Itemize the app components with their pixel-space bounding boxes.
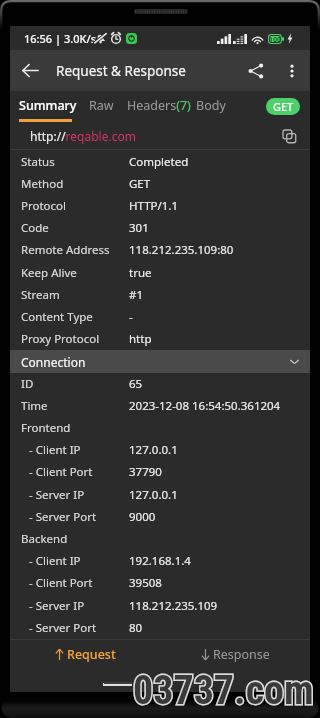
button[interactable]: - Client IP [10, 550, 310, 572]
button[interactable]: Keep Alive [10, 262, 310, 284]
staticText: 301 [129, 220, 149, 236]
staticText: Time [21, 398, 48, 414]
button[interactable]: ID [10, 373, 310, 395]
button[interactable]: Content Type [10, 306, 310, 328]
button[interactable]: Proxy Protocol [10, 328, 310, 350]
staticText: #1 [129, 287, 144, 303]
button[interactable]: Remote Address [10, 239, 310, 261]
staticText: 65 [129, 376, 143, 392]
staticText: HTTP/1.1 [129, 198, 179, 214]
button[interactable]: Backend [10, 528, 310, 550]
staticText: 192.168.1.4 [129, 553, 191, 569]
staticText: Proxy Protocol [21, 331, 100, 347]
button[interactable]: - Client IP [10, 439, 310, 461]
button[interactable]: GET [266, 98, 300, 115]
staticText: GET [129, 176, 151, 192]
button[interactable]: Response [160, 646, 310, 692]
staticText: Code [21, 220, 49, 236]
button[interactable]: - Server IP [10, 484, 310, 506]
staticText: 39508 [129, 575, 162, 591]
staticText: 03737.com [133, 667, 314, 714]
staticText: GET [273, 99, 294, 114]
button[interactable]: Raw [79, 91, 124, 120]
staticText: Request [67, 646, 116, 663]
staticText: - Client Port [29, 575, 93, 591]
button[interactable]: Copy [278, 125, 300, 147]
staticText: 118.212.235.109 [129, 598, 218, 614]
staticText: Remote Address [21, 242, 110, 258]
button[interactable]: Method [10, 173, 310, 195]
staticText: 03737.com [133, 667, 314, 714]
button[interactable]: Time [10, 395, 310, 417]
staticText: ID [21, 376, 34, 392]
staticText: Frontend [21, 420, 71, 436]
staticText: Summary [19, 97, 77, 114]
staticText: Response [213, 646, 270, 663]
staticText: - Client IP [29, 553, 81, 569]
staticText: Protocol [21, 198, 66, 214]
staticText: 2023-12-08 16:54:50.361204 [129, 398, 281, 414]
button[interactable]: Frontend [10, 417, 310, 439]
staticText: 9000 [129, 509, 156, 525]
staticText: Content Type [21, 309, 93, 325]
staticText: 80 [129, 620, 143, 636]
staticText: Status [21, 154, 55, 170]
staticText: http [129, 331, 152, 347]
staticText: 127.0.0.1 [129, 442, 178, 458]
button[interactable]: More options [274, 53, 310, 89]
button[interactable]: Body [186, 91, 236, 120]
staticText: Connection [21, 354, 86, 370]
button[interactable]: Request [10, 646, 160, 692]
button[interactable]: Status [10, 151, 310, 173]
staticText: Body [196, 97, 226, 114]
staticText: true [129, 265, 152, 281]
button[interactable]: Summary [9, 91, 87, 120]
staticText: - [129, 309, 133, 325]
button[interactable]: - Client Port [10, 572, 310, 594]
staticText: 100 [269, 35, 282, 44]
button[interactable]: - Server IP [10, 595, 310, 617]
staticText: 16:56 | 3.0K/s [24, 31, 97, 46]
staticText: 118.212.235.109:80 [129, 242, 234, 258]
staticText: - Server IP [29, 598, 85, 614]
button[interactable]: Back [10, 50, 51, 91]
button[interactable]: Connection [10, 350, 310, 373]
button[interactable]: Share [238, 53, 274, 89]
staticText: http://reqable.com [30, 128, 136, 144]
staticText: Keep Alive [21, 265, 77, 281]
button[interactable]: Headers(7) [117, 91, 201, 120]
staticText: Backend [21, 531, 68, 547]
staticText: Request & Response [56, 62, 186, 80]
button[interactable]: Code [10, 217, 310, 239]
staticText: 127.0.0.1 [129, 487, 178, 503]
button[interactable]: - Server Port [10, 506, 310, 528]
staticText: 37790 [129, 464, 162, 480]
staticText: Stream [21, 287, 60, 303]
button[interactable]: - Server Port [10, 617, 310, 639]
button[interactable]: Stream [10, 284, 310, 306]
button[interactable]: http://reqable.com [10, 122, 310, 149]
staticText: - Client Port [29, 464, 93, 480]
staticText: Completed [129, 154, 189, 170]
staticText: Raw [89, 97, 114, 114]
staticText: Headers(7) [127, 97, 191, 114]
staticText: Method [21, 176, 64, 192]
staticText: - Server Port [29, 620, 97, 636]
staticText: - Server Port [29, 509, 97, 525]
button[interactable]: - Client Port [10, 461, 310, 483]
staticText: - Server IP [29, 487, 85, 503]
button[interactable]: Protocol [10, 195, 310, 217]
staticText: - Client IP [29, 442, 81, 458]
